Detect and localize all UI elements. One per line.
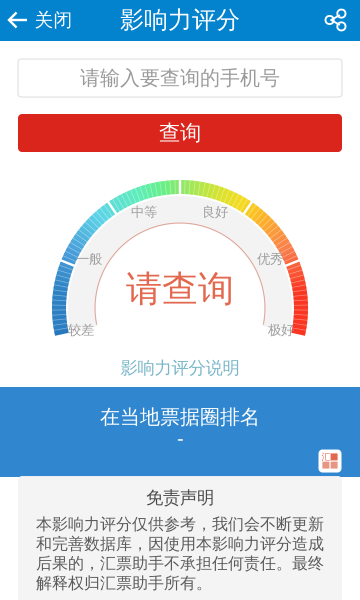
button[interactable]: Share [311,0,359,40]
staticText: 影响力评分说明 [120,357,239,379]
staticText: 本影响力评分仅供参考，我们会不断更新和完善数据库，因使用本影响力评分造成后果的，… [36,514,324,593]
staticText: 汇 [321,451,330,463]
staticText: 较差 [68,322,94,338]
staticText: 影响力评分 [120,5,240,35]
staticText: 中等 [131,204,157,220]
staticText: 查询 [159,120,201,146]
staticText: 请查询 [126,267,234,311]
staticText: 良好 [202,204,228,220]
button[interactable]: 关闭 [0,0,84,40]
staticText: 极好 [268,322,294,338]
button[interactable]: 查询 [18,114,342,152]
staticText: 优秀 [257,251,283,267]
staticText: 关闭 [34,8,72,31]
staticText: 一般 [76,251,102,267]
staticText: - [177,425,183,451]
staticText: 免责声明 [146,487,214,508]
staticText: 请输入要查询的手机号 [80,66,280,90]
button[interactable]: 影响力评分说明 [108,351,251,385]
staticText: 在当地票据圈排名 [100,405,260,429]
